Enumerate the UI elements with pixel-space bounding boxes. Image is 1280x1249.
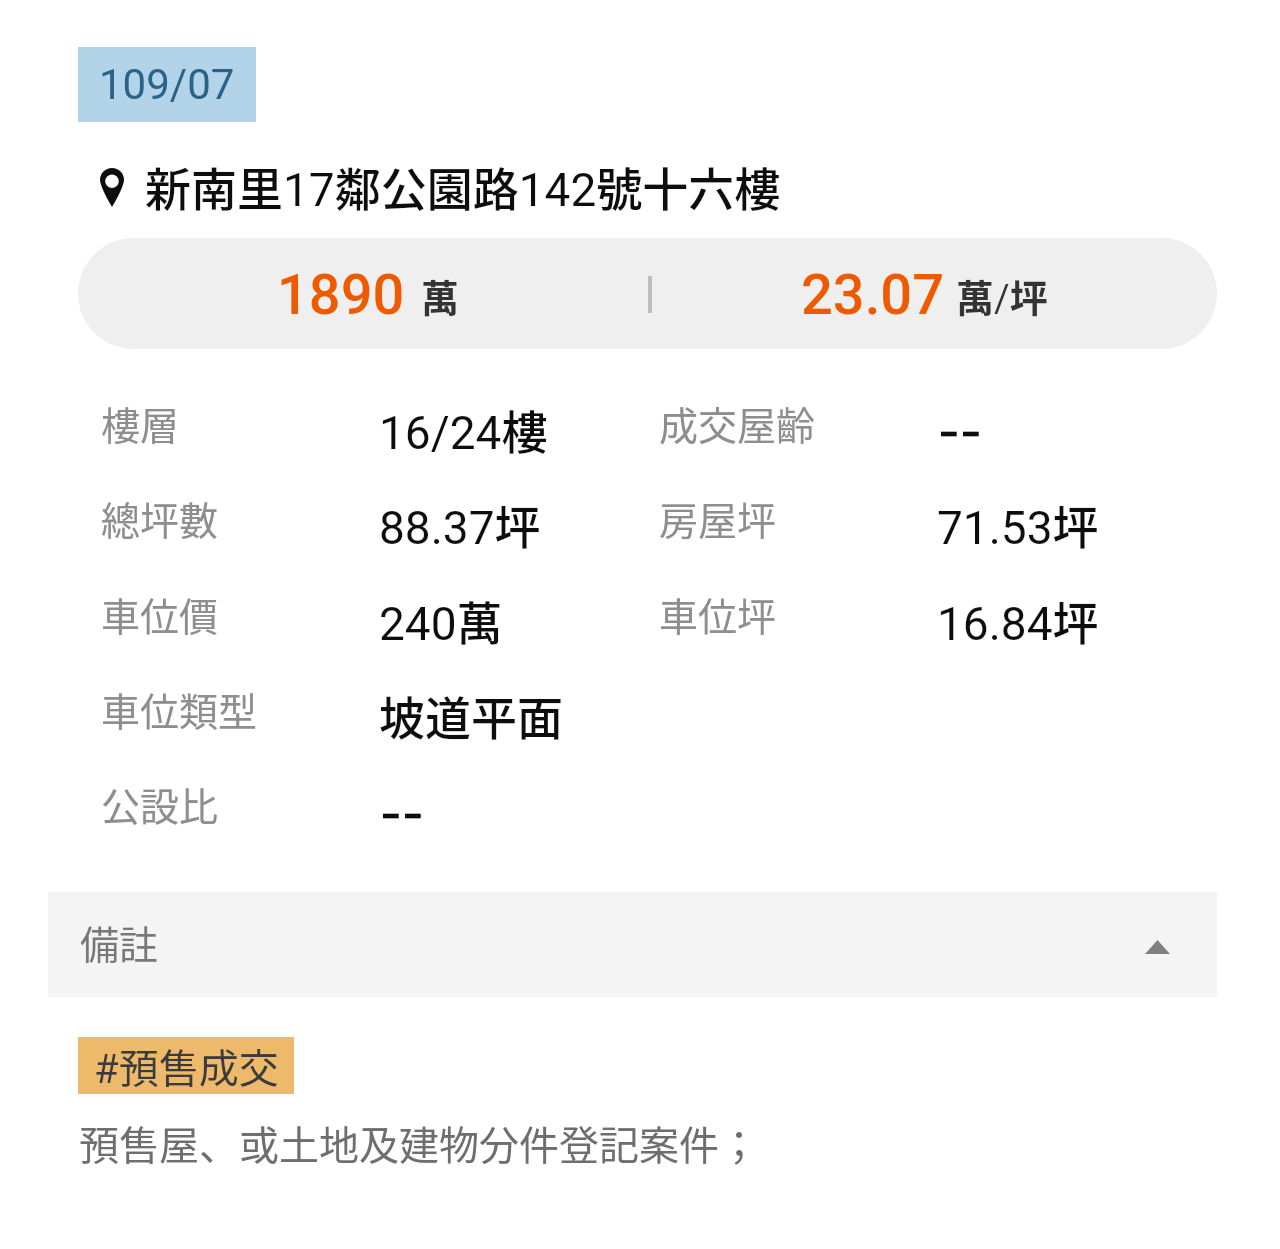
staticText: 車位類型 bbox=[101, 681, 258, 737]
staticText: 車位價 bbox=[101, 586, 219, 642]
button[interactable]: 備註 bbox=[48, 892, 1217, 997]
staticText: 萬 bbox=[421, 268, 460, 323]
staticText: 16.84坪 bbox=[937, 587, 1099, 654]
button[interactable]: Location bbox=[94, 160, 130, 214]
staticText: 萬/坪 bbox=[956, 268, 1048, 323]
button[interactable]: 109/07 bbox=[78, 47, 256, 122]
staticText: 240萬 bbox=[379, 587, 503, 654]
staticText: 71.53坪 bbox=[937, 491, 1099, 558]
staticText: 總坪數 bbox=[101, 490, 219, 546]
staticText: 預售屋、或土地及建物分件登記案件； bbox=[79, 1114, 759, 1172]
other: Collapse remarks bbox=[1145, 940, 1170, 954]
button[interactable]: 1890 bbox=[78, 238, 1217, 349]
staticText: 公設比 bbox=[101, 776, 219, 832]
staticText: 88.37坪 bbox=[379, 491, 541, 558]
staticText: 23.07 bbox=[801, 262, 944, 328]
button[interactable]: #預售成交 bbox=[78, 1037, 294, 1094]
staticText: 房屋坪 bbox=[659, 490, 777, 546]
staticText: 成交屋齡 bbox=[659, 395, 816, 451]
staticText: 16/24樓 bbox=[379, 396, 548, 463]
staticText: 109/07 bbox=[99, 60, 235, 109]
staticText: 1890 bbox=[277, 262, 405, 328]
staticText: 車位坪 bbox=[659, 586, 777, 642]
staticText: #預售成交 bbox=[94, 1037, 279, 1094]
staticText: 坡道平面 bbox=[379, 682, 563, 749]
staticText: 新南里17鄰公園路142號十六樓 bbox=[145, 153, 781, 220]
staticText: 樓層 bbox=[101, 395, 180, 451]
staticText: 備註 bbox=[80, 914, 159, 970]
